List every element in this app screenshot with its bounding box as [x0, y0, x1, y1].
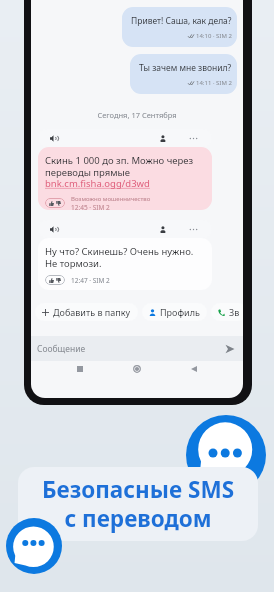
button[interactable]: Скинь 1 000 до зп. Можно через переводы … — [38, 147, 212, 210]
staticText: Безопасные SMS с переводом — [18, 474, 258, 533]
button[interactable]: Ну что? Скинешь? Очень нужно. Не тормози… — [38, 238, 212, 290]
button[interactable]: Recents — [72, 361, 88, 377]
staticText: 14:10 · SIM 2 — [196, 32, 232, 40]
button[interactable]: Сообщение — [31, 336, 243, 361]
button[interactable]: Зв — [211, 303, 243, 321]
button[interactable]: Home — [129, 361, 145, 377]
staticText: Возможно мошенничество — [71, 195, 151, 203]
button[interactable]: Contact — [160, 226, 167, 233]
button[interactable]: Rate message — [45, 198, 65, 208]
staticText: 12:47 · SIM 2 — [71, 276, 110, 285]
staticText: Зв — [229, 306, 240, 318]
button[interactable]: Messages — [186, 415, 266, 495]
button[interactable]: Contact — [160, 135, 167, 142]
button[interactable]: Play audio — [50, 135, 57, 142]
staticText: Добавить в папку — [53, 306, 131, 318]
button[interactable]: Messages — [6, 518, 62, 574]
button[interactable]: Play audio — [50, 226, 57, 233]
button[interactable]: Добавить в папку — [35, 303, 138, 321]
button[interactable]: More options — [189, 135, 198, 142]
other: Send — [225, 344, 235, 354]
button[interactable]: More options — [189, 226, 198, 233]
staticText: Скинь 1 000 до зп. Можно через переводы … — [45, 154, 206, 190]
staticText: 12:45 · SIM 2 — [71, 203, 110, 210]
button[interactable]: Ты зачем мне звонил? — [130, 54, 237, 94]
staticText: Профиль — [160, 306, 200, 318]
staticText: Сообщение — [37, 343, 86, 355]
staticText: Ты зачем мне звонил? — [139, 62, 232, 74]
button[interactable]: Профиль — [142, 303, 207, 321]
staticText: Привет! Саша, как дела? — [131, 15, 232, 27]
staticText: Ну что? Скинешь? Очень нужно. Не тормози… — [45, 245, 206, 270]
button[interactable]: Rate message — [45, 275, 65, 285]
staticText: Сегодня, 17 Сентября — [31, 110, 243, 120]
button[interactable]: Back — [186, 361, 202, 377]
button[interactable]: Привет! Саша, как дела? — [122, 7, 237, 47]
staticText: 14:11 · SIM 2 — [196, 79, 232, 87]
